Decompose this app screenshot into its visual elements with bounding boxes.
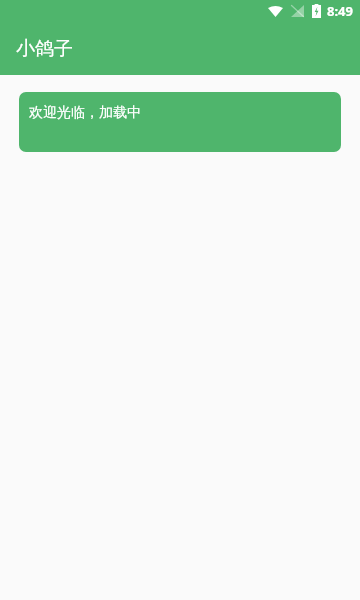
button[interactable]: 小鸽子	[0, 22, 360, 75]
staticText: 小鸽子	[16, 37, 73, 61]
staticText: 8:49	[327, 2, 353, 20]
button[interactable]: 欢迎光临，加载中	[19, 92, 341, 152]
staticText: 欢迎光临，加载中	[29, 104, 141, 122]
